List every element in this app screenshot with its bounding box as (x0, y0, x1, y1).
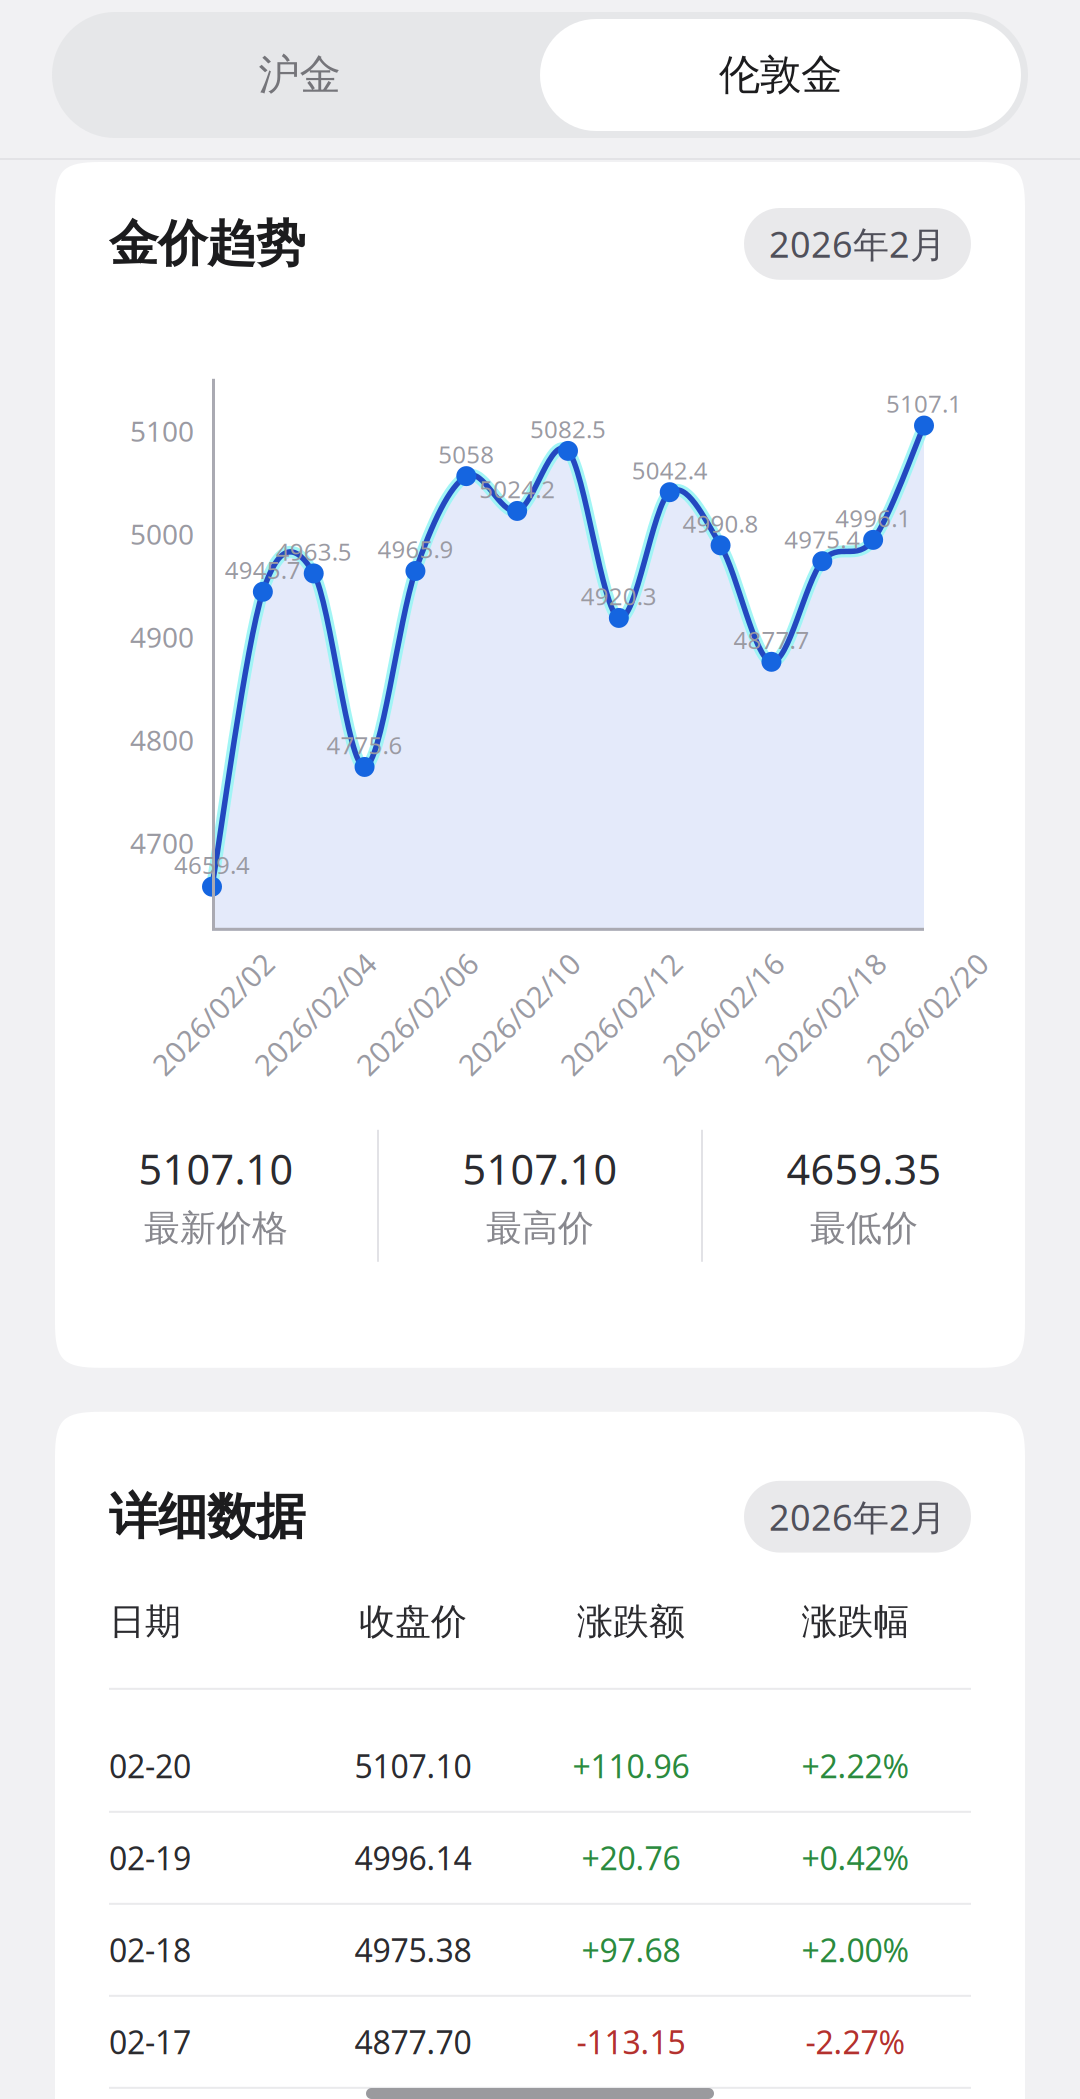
staticText: 4900 (130, 618, 194, 655)
staticText: 涨跌幅 (801, 1600, 909, 1644)
staticText: +0.42% (801, 1837, 909, 1879)
staticText: 4996.14 (354, 1837, 471, 1879)
staticText: 4975.4 (784, 523, 860, 555)
staticText: 5000 (130, 515, 194, 552)
staticText: 2026/02/04 (236, 994, 394, 1033)
staticText: 4945.7 (225, 554, 301, 586)
staticText: +20.76 (581, 1837, 680, 1879)
button[interactable]: 沪金 (59, 19, 540, 131)
button[interactable]: 02-17 (109, 1997, 971, 2087)
staticText: 4963.5 (276, 535, 352, 567)
staticText: 4975.38 (354, 1929, 471, 1971)
staticText: 金价趋势 (109, 214, 305, 274)
staticText: 详细数据 (109, 1486, 305, 1547)
button[interactable]: 伦敦金 (540, 19, 1021, 131)
staticText: 2026年2月 (769, 1493, 946, 1541)
staticText: 2026/02/20 (848, 994, 1006, 1033)
staticText: +97.68 (581, 1929, 680, 1971)
button[interactable]: 2026年2月 (744, 1481, 971, 1553)
staticText: 2026/02/02 (134, 994, 292, 1033)
staticText: 2026/02/10 (440, 994, 598, 1033)
staticText: 5058 (438, 438, 494, 470)
staticText: 5024.2 (479, 473, 555, 505)
staticText: 4659.35 (786, 1141, 941, 1196)
staticText: 4775.6 (327, 729, 403, 761)
staticText: 4700 (130, 824, 194, 861)
staticText: 沪金 (258, 50, 340, 100)
staticText: 4996.1 (835, 502, 911, 534)
staticText: 4659.4 (174, 849, 250, 881)
button[interactable]: 02-19 (109, 1813, 971, 1903)
staticText: 2026/02/16 (644, 994, 802, 1033)
staticText: 5107.10 (138, 1141, 293, 1196)
staticText: +2.00% (801, 1929, 909, 1971)
staticText: 日期 (109, 1600, 181, 1644)
staticText: 2026/02/12 (542, 994, 700, 1033)
staticText: -113.15 (576, 2021, 685, 2063)
staticText: 最新价格 (144, 1206, 288, 1250)
staticText: 5042.4 (632, 454, 708, 486)
staticText: 2026/02/18 (746, 994, 904, 1033)
button[interactable]: 02-20 (109, 1721, 971, 1811)
staticText: 5107.10 (462, 1141, 617, 1196)
staticText: 5100 (130, 412, 194, 449)
staticText: +2.22% (801, 1745, 909, 1787)
staticText: 5082.5 (530, 413, 606, 445)
staticText: 02-18 (109, 1929, 191, 1971)
staticText: 最高价 (486, 1206, 594, 1250)
staticText: 最低价 (810, 1206, 918, 1250)
staticText: 02-17 (109, 2021, 191, 2063)
staticText: 5107.1 (886, 388, 962, 419)
staticText: 2026年2月 (769, 220, 946, 268)
staticText: 收盘价 (359, 1600, 467, 1644)
staticText: -2.27% (805, 2021, 905, 2063)
staticText: 02-20 (109, 1745, 191, 1787)
staticText: 涨跌额 (577, 1600, 685, 1644)
staticText: 02-19 (109, 1837, 191, 1879)
staticText: 5107.10 (354, 1745, 471, 1787)
button[interactable]: 2026年2月 (744, 208, 971, 280)
staticText: 2026/02/06 (338, 994, 496, 1033)
staticText: 4965.9 (377, 533, 453, 565)
staticText: 4800 (130, 721, 194, 758)
staticText: 4920.3 (581, 580, 657, 612)
staticText: 4877.7 (733, 624, 809, 656)
staticText: +110.96 (572, 1745, 689, 1787)
staticText: 4990.8 (683, 507, 759, 539)
staticText: 伦敦金 (719, 50, 842, 100)
staticText: 4877.70 (354, 2021, 471, 2063)
button[interactable]: 02-18 (109, 1905, 971, 1995)
